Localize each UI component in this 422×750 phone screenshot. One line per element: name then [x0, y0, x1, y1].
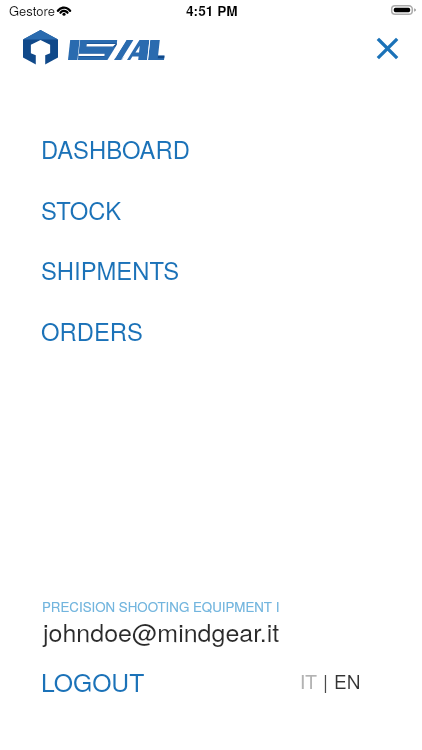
- staticText: PRECISION SHOOTING EQUIPMENT I: [42, 597, 280, 616]
- staticText: 4:51 PM: [186, 1, 238, 21]
- staticText: |: [323, 667, 328, 694]
- staticText: Gestore: [9, 1, 55, 20]
- button[interactable]: EN: [334, 667, 361, 694]
- button[interactable]: IT: [300, 667, 317, 694]
- button[interactable]: SHIPMENTS: [0, 250, 422, 290]
- staticText: LOGOUT: [41, 664, 145, 699]
- staticText: ORDERS: [41, 314, 143, 348]
- staticText: johndoe@mindgear.it: [43, 613, 280, 649]
- staticText: EN: [334, 667, 361, 694]
- staticText: DASHBOARD: [41, 132, 190, 166]
- staticText: IT: [300, 667, 317, 694]
- button[interactable]: Close menu: [365, 26, 409, 70]
- button[interactable]: ORDERS: [0, 311, 422, 351]
- staticText: STOCK: [41, 193, 122, 227]
- staticText: SHIPMENTS: [41, 253, 180, 287]
- button[interactable]: LOGOUT: [28, 661, 158, 701]
- button[interactable]: DASHBOARD: [0, 129, 422, 169]
- button[interactable]: STOCK: [0, 190, 422, 230]
